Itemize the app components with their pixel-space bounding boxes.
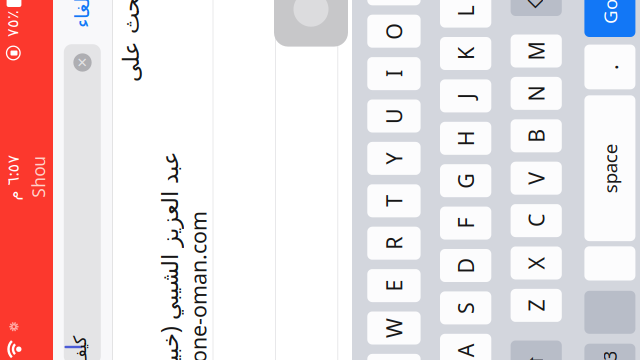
button[interactable]: space	[584, 95, 635, 241]
staticText: Z	[530, 291, 542, 319]
button[interactable]: W	[367, 311, 421, 344]
staticText: Shou	[17, 165, 59, 188]
staticText: W	[384, 314, 404, 342]
staticText: R	[387, 229, 400, 257]
button[interactable]: J	[440, 79, 491, 112]
button[interactable]: Dictate	[584, 246, 635, 280]
staticText: N	[528, 79, 544, 107]
staticText: J	[463, 82, 469, 110]
staticText: كيف	[64, 342, 95, 360]
button[interactable]: Q	[367, 354, 421, 360]
button[interactable]: H	[440, 122, 491, 155]
staticText: S	[460, 294, 472, 322]
button[interactable]: N	[511, 77, 562, 110]
button[interactable]: R	[367, 227, 421, 260]
staticText: T	[388, 187, 400, 215]
button[interactable]: G	[440, 164, 491, 197]
button[interactable]: O	[367, 15, 421, 48]
staticText: Y	[388, 144, 400, 172]
staticText: L	[460, 0, 471, 25]
staticText: ⌫	[522, 0, 550, 6]
staticText: G	[458, 166, 474, 195]
button[interactable]: L	[440, 0, 491, 28]
button[interactable]: X	[511, 246, 562, 279]
button[interactable]: Z	[511, 289, 562, 322]
staticText: ٧٥٪	[0, 14, 26, 33]
staticText: ⇧	[528, 351, 545, 360]
button[interactable]: Period	[584, 45, 635, 89]
staticText: D	[458, 251, 474, 280]
staticText: M	[527, 37, 546, 65]
button[interactable]: Y	[367, 142, 421, 175]
staticText: phone-oman.com	[109, 286, 287, 314]
button[interactable]: A	[440, 334, 491, 360]
button[interactable]: M	[511, 34, 562, 67]
button[interactable]: P	[367, 0, 421, 5]
button[interactable]: Clear text	[71, 51, 93, 73]
staticText: O	[385, 17, 402, 45]
button[interactable]: C	[511, 204, 562, 237]
button[interactable]: K	[440, 37, 491, 70]
button[interactable]: Numbers	[584, 344, 635, 360]
button[interactable]: عبد العزيز الشيبي (خبير أيفون)	[151, 0, 213, 360]
staticText: C	[530, 206, 543, 235]
staticText: 123	[595, 354, 625, 360]
staticText: space	[585, 156, 635, 181]
staticText: عبد العزيز الشيبي (خبير أيفون)	[25, 281, 314, 311]
staticText: X	[530, 249, 543, 277]
staticText: F	[460, 209, 471, 237]
button[interactable]: البحث على	[113, 0, 213, 360]
button[interactable]: Shift	[511, 340, 562, 360]
staticText: A	[459, 336, 473, 360]
staticText: I	[390, 59, 397, 88]
staticText: إلغاء	[63, 0, 100, 21]
staticText: B	[529, 122, 543, 150]
button[interactable]: B	[511, 119, 562, 152]
staticText: ✕	[77, 55, 88, 70]
staticText: K	[459, 39, 472, 68]
button[interactable]: D	[440, 249, 491, 282]
staticText: V	[530, 164, 543, 192]
staticText: U	[386, 102, 402, 130]
button[interactable]: U	[367, 99, 421, 132]
button[interactable]: I	[367, 57, 421, 90]
staticText: E	[388, 271, 400, 300]
button[interactable]: S	[440, 291, 491, 324]
staticText: Go	[597, 0, 622, 24]
button[interactable]: Go	[584, 0, 635, 37]
button[interactable]: T	[367, 184, 421, 217]
button[interactable]: F	[440, 207, 491, 240]
button[interactable]: E	[367, 269, 421, 302]
button[interactable]: إلغاء	[71, 0, 93, 28]
button[interactable]: Delete	[511, 0, 562, 16]
staticText: البحث على	[78, 17, 183, 43]
staticText: ٦:٥٧ م	[0, 167, 36, 189]
button[interactable]: V	[511, 162, 562, 195]
staticText: H	[458, 124, 474, 152]
